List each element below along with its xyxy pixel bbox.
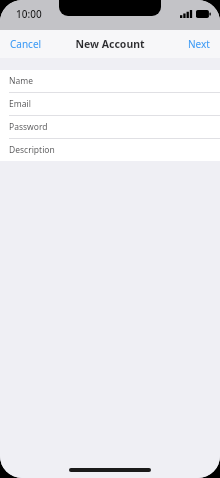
staticText: Next bbox=[188, 37, 210, 51]
staticText: 10:00 bbox=[16, 7, 42, 21]
button[interactable]: Next bbox=[178, 32, 220, 56]
staticText: Password bbox=[9, 121, 48, 133]
staticText: Email bbox=[9, 98, 31, 110]
button[interactable]: Password bbox=[0, 116, 220, 139]
button[interactable]: Cancel bbox=[0, 32, 52, 56]
button[interactable]: Description bbox=[0, 139, 220, 161]
button[interactable]: Email bbox=[0, 93, 220, 116]
button[interactable]: Name bbox=[0, 70, 220, 93]
staticText: Description bbox=[9, 144, 55, 156]
staticText: Cancel bbox=[10, 37, 42, 51]
staticText: New Account bbox=[75, 37, 145, 51]
staticText: Name bbox=[9, 75, 33, 87]
